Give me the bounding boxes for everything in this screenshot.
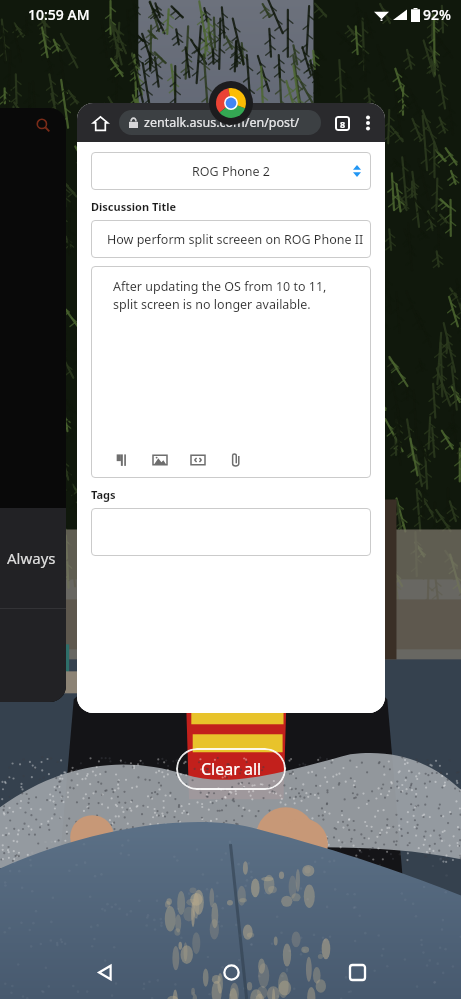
button[interactable]: After updating the OS from 10 to 11, spl… [91,266,371,478]
button[interactable]: ROG Phone 2 [91,152,371,190]
button[interactable]: Paragraph [113,451,131,469]
staticText: After updating the OS from 10 to 11, spl… [113,278,353,313]
button[interactable]: More options [355,110,381,136]
staticText: How perform split screeen on ROG Phone I… [107,231,371,248]
button[interactable]: Insert code [189,451,207,469]
button[interactable]: Recents [334,949,380,995]
button[interactable]: Tabs: 8 [329,110,355,136]
button[interactable]: Always [0,108,66,702]
staticText: 10:59 AM [28,5,90,24]
staticText: Tags [91,487,116,502]
staticText: 8 [340,118,346,130]
button[interactable]: Home [87,110,113,136]
staticText: Discussion Title [91,199,177,214]
staticText: Always [7,548,56,568]
button[interactable]: Insert image [151,451,169,469]
button[interactable]: Chrome [209,81,253,125]
button[interactable]: Home [208,949,254,995]
staticText: zentalk.asus.com/en/post/disc [144,114,321,131]
staticText: ROG Phone 2 [192,163,270,180]
button[interactable]: Home [77,103,385,713]
staticText: 92% [423,5,451,24]
button[interactable]: Attach file [227,451,245,469]
button[interactable]: Back [81,949,127,995]
button[interactable]: How perform split screeen on ROG Phone I… [91,220,371,258]
button[interactable]: zentalk.asus.com/en/post/disc [119,110,321,135]
staticText: Clear all [201,758,262,780]
button[interactable]: Clear all [176,748,286,790]
button[interactable] [91,508,371,556]
